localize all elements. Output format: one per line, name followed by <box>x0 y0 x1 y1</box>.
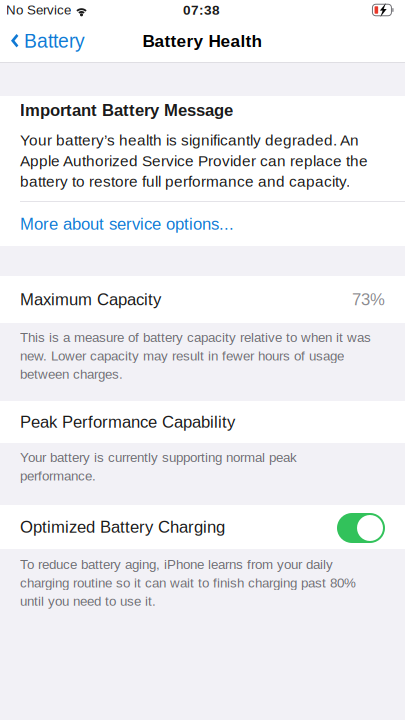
staticText: 07:38 <box>183 2 220 18</box>
staticText: This is a measure of battery capacity re… <box>20 330 371 382</box>
staticText: Peak Performance Capability <box>20 413 235 431</box>
button[interactable]: Optimized Battery Charging <box>0 505 405 549</box>
staticText: Battery <box>24 30 85 52</box>
staticText: Important Battery Message <box>20 101 233 120</box>
staticText: Your battery is currently supporting nor… <box>20 450 297 483</box>
staticText: Maximum Capacity <box>20 290 161 309</box>
staticText: To reduce battery aging, iPhone learns f… <box>20 557 356 609</box>
button[interactable]: More about service options... <box>0 202 405 246</box>
button[interactable]: Battery <box>0 21 97 61</box>
staticText: Optimized Battery Charging <box>20 518 225 536</box>
staticText: Battery Health <box>142 31 262 51</box>
staticText: 73% <box>352 290 385 309</box>
staticText: Your battery’s health is significantly d… <box>20 132 368 190</box>
staticText: No Service <box>6 3 71 17</box>
staticText: More about service options... <box>20 215 234 233</box>
